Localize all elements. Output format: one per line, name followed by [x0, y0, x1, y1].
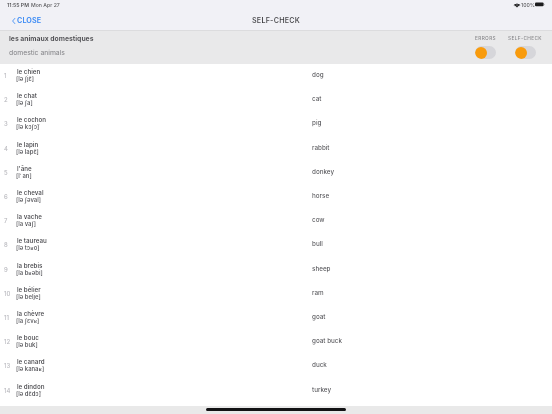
staticText: domestic animals: [9, 48, 65, 56]
staticText: le chat: [17, 92, 37, 100]
staticText: 8: [4, 241, 8, 248]
button[interactable]: 10: [0, 282, 552, 306]
staticText: [lə dɛ̃dɔ̃]: [16, 390, 41, 397]
staticText: 5: [4, 169, 8, 176]
staticText: 2: [4, 96, 8, 103]
button[interactable]: 12: [0, 330, 552, 354]
staticText: [la bʁəbi]: [16, 269, 43, 277]
button[interactable]: 13: [0, 354, 552, 378]
staticText: 6: [4, 193, 8, 200]
button[interactable]: 6: [0, 185, 552, 209]
staticText: le bouc: [17, 334, 39, 342]
staticText: [lə belje]: [16, 293, 41, 300]
button[interactable]: 9: [0, 258, 552, 282]
button[interactable]: SELF-CHECK: [507, 35, 543, 59]
staticText: le cheval: [17, 189, 44, 197]
staticText: l'âne: [17, 165, 32, 173]
button[interactable]: 8: [0, 233, 552, 257]
staticText: sheep: [312, 265, 331, 273]
staticText: [lə kɔʃɔ̃]: [16, 123, 40, 130]
staticText: turkey: [312, 386, 332, 394]
staticText: le dindon: [17, 383, 45, 391]
staticText: la brebis: [17, 262, 43, 270]
staticText: cow: [312, 216, 325, 224]
staticText: ram: [312, 289, 324, 297]
staticText: Mon Apr 27: [31, 2, 60, 8]
staticText: [lˈ an]: [16, 172, 32, 179]
staticText: 10: [4, 290, 11, 297]
button[interactable]: 3: [0, 112, 552, 136]
staticText: 1: [4, 72, 7, 79]
staticText: 14: [4, 387, 11, 394]
staticText: [lə ʃa]: [16, 99, 33, 106]
staticText: le lapin: [17, 141, 39, 149]
staticText: horse: [312, 192, 330, 200]
staticText: pig: [312, 119, 322, 127]
staticText: [lə ʃəval]: [16, 196, 42, 203]
staticText: la vache: [17, 213, 42, 221]
staticText: le canard: [17, 358, 45, 366]
staticText: donkey: [312, 168, 335, 176]
staticText: dog: [312, 71, 324, 79]
button[interactable]: 11: [0, 306, 552, 330]
button[interactable]: 1: [0, 64, 552, 88]
staticText: goat buck: [312, 337, 342, 345]
staticText: [lə tɔʁo]: [16, 244, 40, 252]
staticText: SELF-CHECK: [252, 16, 301, 25]
staticText: duck: [312, 361, 327, 369]
button[interactable]: 14: [0, 379, 552, 403]
staticText: 3: [4, 120, 8, 127]
staticText: le chien: [17, 68, 41, 76]
staticText: goat: [312, 313, 326, 321]
staticText: [lə lapɛ̃]: [16, 148, 39, 155]
staticText: 7: [4, 217, 8, 224]
staticText: [lə buk]: [16, 341, 38, 348]
staticText: 13: [4, 362, 11, 369]
button[interactable]: ERRORS: [474, 35, 497, 59]
staticText: le bélier: [17, 286, 41, 294]
staticText: le cochon: [17, 116, 47, 124]
staticText: [lə ʃjɛ̃]: [16, 75, 35, 82]
staticText: cat: [312, 95, 322, 103]
staticText: [la ʃɛvʁ]: [16, 317, 40, 325]
staticText: 11:55 PM: [7, 2, 30, 8]
staticText: 100%: [521, 2, 536, 8]
button[interactable]: 7: [0, 209, 552, 233]
staticText: bull: [312, 240, 323, 248]
staticText: la chèvre: [17, 310, 45, 318]
staticText: 9: [4, 266, 8, 273]
staticText: 12: [4, 338, 11, 345]
staticText: 11: [4, 314, 9, 321]
staticText: 4: [4, 145, 8, 152]
staticText: [lə kanaʁ]: [16, 365, 45, 373]
staticText: le taureau: [17, 237, 47, 245]
staticText: CLOSE: [17, 16, 42, 25]
staticText: [la vaʃ]: [16, 220, 36, 227]
button[interactable]: 5: [0, 161, 552, 185]
staticText: ERRORS: [475, 35, 496, 41]
staticText: SELF-CHECK: [508, 35, 542, 41]
button[interactable]: 4: [0, 137, 552, 161]
staticText: les animaux domestiques: [9, 34, 94, 42]
button[interactable]: CLOSE: [10, 14, 44, 27]
button[interactable]: 2: [0, 88, 552, 112]
staticText: rabbit: [312, 144, 330, 152]
